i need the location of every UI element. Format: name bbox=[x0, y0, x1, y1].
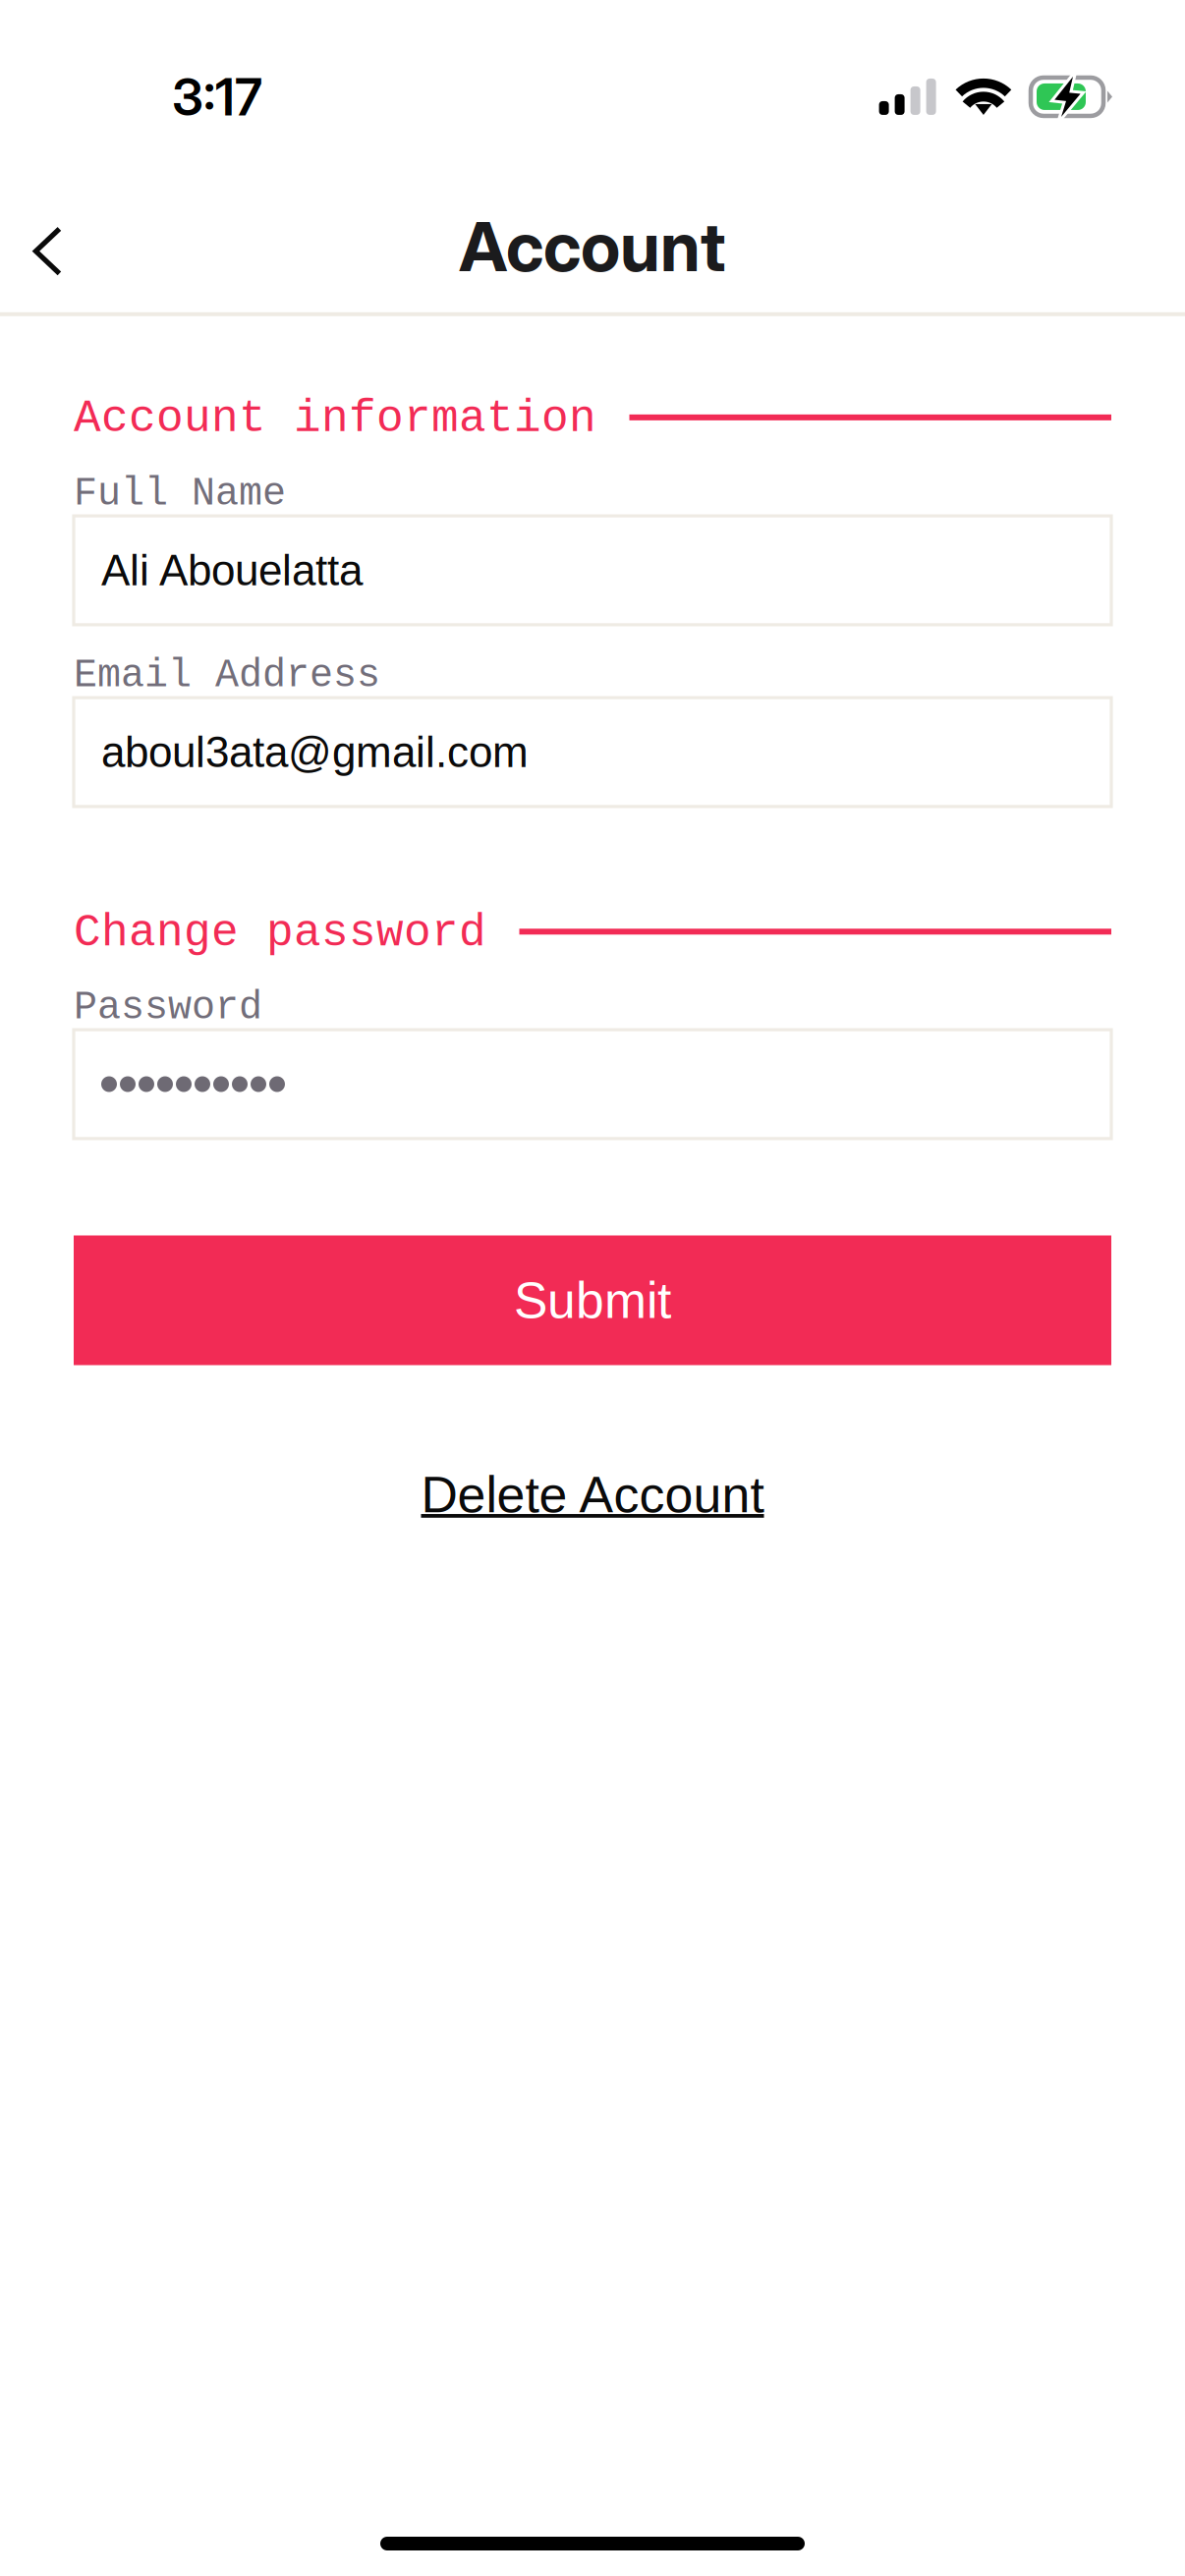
staticText: aboul3ata@gmail.com bbox=[101, 728, 529, 776]
button[interactable]: Delete Account bbox=[74, 1466, 1111, 1523]
staticText: Account information bbox=[74, 394, 596, 445]
button[interactable]: Submit bbox=[74, 1235, 1111, 1365]
staticText: Email Address bbox=[74, 653, 380, 698]
staticText: Ali Abouelatta bbox=[101, 546, 363, 594]
staticText: Delete Account bbox=[421, 1466, 764, 1523]
staticText: Full Name bbox=[74, 472, 286, 516]
staticText: Change password bbox=[74, 908, 486, 959]
staticText: Password bbox=[74, 986, 262, 1030]
staticText: Account bbox=[459, 205, 726, 288]
staticText: Submit bbox=[514, 1272, 671, 1329]
staticText: 3:17 bbox=[172, 66, 262, 128]
button[interactable]: Back bbox=[0, 206, 89, 287]
